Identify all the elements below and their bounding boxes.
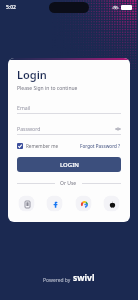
staticText: LOGIN	[60, 161, 79, 169]
staticText: Forgot Password ?	[80, 143, 121, 149]
staticText: swivl	[73, 272, 95, 284]
other: Show password	[115, 126, 121, 132]
button[interactable]: Forgot Password ?	[80, 143, 121, 149]
button[interactable]: Remember me	[17, 142, 59, 150]
button[interactable]: LOGIN	[17, 157, 121, 172]
staticText: Login	[17, 67, 47, 82]
button[interactable]: Sign in with Apple	[102, 194, 121, 213]
button[interactable]: Sign in with Google	[74, 194, 93, 213]
button[interactable]: Sign in with phone	[17, 194, 36, 213]
staticText: Powered by	[43, 277, 71, 284]
button[interactable]: Password	[17, 123, 121, 135]
staticText: Password	[17, 125, 41, 132]
staticText: Email	[17, 104, 31, 111]
staticText: Remember me	[26, 143, 59, 149]
staticText: Or Use	[60, 180, 77, 187]
button[interactable]: Sign in with Facebook	[45, 194, 64, 213]
staticText: 5:02	[6, 4, 16, 11]
staticText: Please Sign in to continue	[17, 85, 78, 92]
button[interactable]: Email	[17, 102, 121, 114]
